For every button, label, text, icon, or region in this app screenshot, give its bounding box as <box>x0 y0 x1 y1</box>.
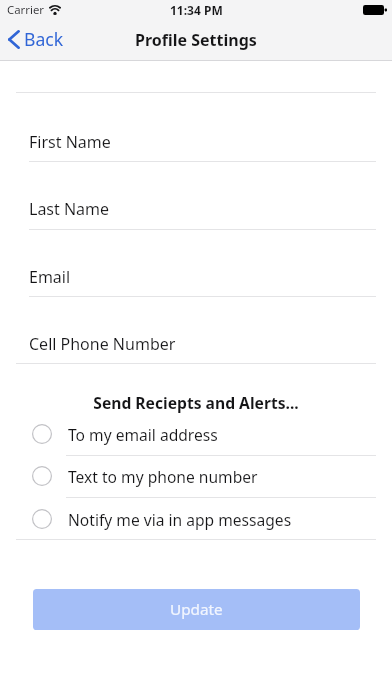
button[interactable]: Cell Phone Number <box>0 296 392 363</box>
staticText: Back <box>24 27 64 51</box>
button[interactable]: Email <box>0 229 392 296</box>
staticText: Send Reciepts and Alerts... <box>0 392 392 413</box>
button[interactable]: Update <box>33 589 360 630</box>
button[interactable]: Text to my phone number <box>0 455 392 497</box>
staticText: Email <box>29 266 71 288</box>
staticText: Profile Settings <box>135 29 257 51</box>
staticText: Update <box>170 599 223 620</box>
staticText: Notify me via in app messages <box>68 509 292 530</box>
staticText: To my email address <box>68 424 218 445</box>
staticText: 11:34 PM <box>170 2 223 18</box>
button[interactable]: Notify me via in app messages <box>0 498 392 540</box>
staticText: Last Name <box>29 198 110 220</box>
button[interactable]: Back <box>0 21 74 57</box>
staticText: Carrier <box>7 2 45 18</box>
button[interactable]: First Name <box>0 92 392 161</box>
button[interactable]: To my email address <box>0 413 392 455</box>
staticText: Text to my phone number <box>68 466 258 487</box>
staticText: First Name <box>29 131 111 153</box>
staticText: Cell Phone Number <box>29 333 176 355</box>
button[interactable]: Last Name <box>0 161 392 229</box>
